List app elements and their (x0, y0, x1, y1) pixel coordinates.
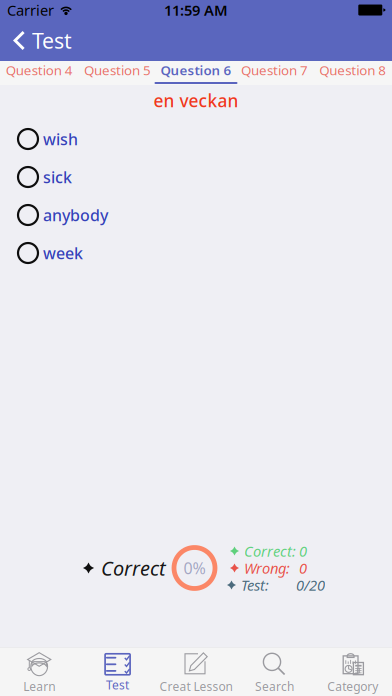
staticText: Question 5 (84, 61, 151, 79)
staticText: week (43, 242, 83, 264)
staticText: Question 8 (319, 61, 386, 79)
button[interactable]: sick (0, 158, 392, 196)
staticText: Test (106, 677, 129, 693)
staticText: Question 4 (6, 61, 73, 79)
button[interactable]: Question 6 (157, 61, 235, 85)
button[interactable]: Category (314, 647, 392, 696)
staticText: Search (255, 678, 294, 694)
staticText: Correct: (244, 541, 296, 561)
button[interactable]: anybody (0, 196, 392, 234)
button[interactable]: Question 7 (235, 61, 314, 85)
staticText: 0% (183, 557, 205, 579)
staticText: Carrier (7, 0, 54, 20)
button[interactable]: Learn (0, 647, 78, 696)
staticText: Test: (241, 575, 269, 595)
staticText: 0 (299, 558, 307, 578)
staticText: Test (32, 26, 72, 55)
button[interactable]: Search (235, 647, 314, 696)
staticText: 0 (299, 541, 307, 561)
staticText: anybody (43, 204, 108, 226)
staticText: Wrong: (244, 558, 290, 578)
button[interactable]: week (0, 234, 392, 272)
staticText: Question 6 (160, 61, 231, 79)
staticText: Creat Lesson (159, 678, 232, 694)
button[interactable]: Test (0, 20, 86, 61)
staticText: 11:59 AM (164, 0, 228, 20)
button[interactable]: Question 5 (78, 61, 157, 85)
staticText: 0/20 (296, 575, 325, 595)
staticText: Question 7 (241, 61, 308, 79)
staticText: Correct (101, 555, 166, 581)
button[interactable]: Test (78, 647, 157, 696)
button[interactable]: Question 8 (314, 61, 392, 85)
button[interactable]: Creat Lesson (157, 647, 235, 696)
button[interactable]: Question 4 (0, 61, 78, 85)
staticText: Learn (23, 678, 55, 694)
staticText: Category (327, 678, 378, 694)
staticText: sick (43, 166, 72, 188)
staticText: wish (43, 128, 78, 150)
button[interactable]: wish (0, 120, 392, 158)
staticText: en veckan (153, 89, 238, 112)
